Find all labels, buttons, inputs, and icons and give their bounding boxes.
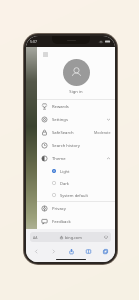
button[interactable]: Share bbox=[66, 246, 76, 256]
button[interactable]: Privacy bbox=[37, 202, 115, 215]
button[interactable]: Search history bbox=[37, 139, 115, 152]
staticText: Theme bbox=[52, 156, 66, 162]
staticText: Privacy bbox=[52, 206, 66, 212]
staticText: Rewards bbox=[52, 104, 69, 110]
button[interactable]: Account avatar bbox=[63, 59, 90, 86]
staticText: Sign in bbox=[69, 89, 83, 95]
staticText: System default bbox=[60, 193, 88, 198]
staticText: Dark bbox=[60, 181, 69, 186]
staticText: AA bbox=[33, 235, 38, 240]
staticText: SafeSearch bbox=[52, 130, 74, 136]
button[interactable]: Rewards bbox=[37, 100, 115, 113]
staticText: bing.com bbox=[65, 235, 82, 240]
staticText: 5:07 bbox=[30, 39, 37, 44]
staticText: Moderate bbox=[94, 130, 111, 135]
button[interactable]: AA bbox=[30, 232, 111, 242]
button[interactable]: Forward bbox=[48, 246, 58, 256]
button[interactable]: Apps bbox=[41, 50, 49, 58]
button[interactable]: Back bbox=[31, 246, 41, 256]
staticText: Light bbox=[60, 169, 70, 174]
button[interactable]: SafeSearch bbox=[37, 126, 115, 139]
staticText: Feedback bbox=[52, 219, 71, 225]
button[interactable]: Bookmarks bbox=[83, 246, 93, 256]
button[interactable]: Dark bbox=[37, 177, 115, 189]
staticText: Settings bbox=[52, 117, 68, 123]
button[interactable]: Theme bbox=[37, 152, 115, 165]
staticText: Search history bbox=[52, 143, 80, 149]
button[interactable]: Settings bbox=[37, 113, 115, 126]
button[interactable]: Feedback bbox=[37, 215, 115, 228]
button[interactable]: Light bbox=[37, 165, 115, 177]
button[interactable]: System default bbox=[37, 189, 115, 201]
button[interactable]: Tabs bbox=[100, 246, 110, 256]
